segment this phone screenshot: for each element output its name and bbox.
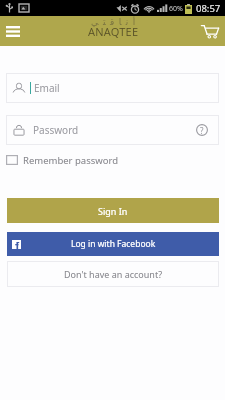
button[interactable]: Don't have an account? [7, 261, 219, 287]
button[interactable]: Password help [189, 117, 215, 143]
button[interactable]: Sign In [7, 198, 219, 223]
staticText: ANAQTEE [88, 24, 139, 39]
staticText: أناقتي [91, 17, 140, 27]
staticText: Don't have an account? [64, 268, 163, 280]
staticText: ? [200, 125, 204, 136]
staticText: Remember password [23, 154, 119, 167]
button[interactable]: Remember password [6, 150, 119, 170]
staticText: Password [33, 123, 79, 137]
button[interactable]: Shopping cart [195, 16, 225, 46]
button[interactable]: Email [6, 73, 219, 103]
button[interactable]: Log in with Facebook [7, 232, 219, 256]
staticText: Log in with Facebook [71, 238, 156, 250]
staticText: Email [34, 81, 60, 95]
button[interactable]: Menu [0, 16, 26, 46]
staticText: Sign In [98, 205, 128, 217]
staticText: 60% [169, 4, 183, 14]
button[interactable]: Password [6, 115, 219, 145]
staticText: 08:57 [196, 2, 221, 15]
